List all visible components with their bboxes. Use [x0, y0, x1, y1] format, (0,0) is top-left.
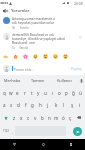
button[interactable]: Kullanıcı	[51, 75, 77, 86]
button[interactable]: ğ	[70, 86, 77, 99]
button[interactable]: j	[44, 99, 52, 111]
button[interactable]: Emoji	[13, 53, 18, 60]
button[interactable]: i	[76, 99, 84, 111]
staticText: Kullanıcı	[57, 78, 72, 83]
staticText: u	[44, 90, 47, 96]
staticText: Arkamguzumaz marakende o cok hayraket yu…	[12, 17, 58, 25]
staticText: g	[31, 102, 34, 108]
button[interactable]: Tamam	[25, 75, 51, 86]
button[interactable]: l	[60, 99, 68, 111]
button[interactable]: k	[52, 99, 60, 111]
staticText: b	[41, 115, 44, 121]
button[interactable]: Back	[0, 6, 85, 15]
staticText: t	[31, 90, 33, 96]
staticText: d	[17, 102, 20, 108]
button[interactable]: c	[25, 111, 32, 124]
button[interactable]: ç	[67, 111, 74, 124]
staticText: m	[54, 115, 59, 121]
staticText: i	[79, 102, 81, 108]
button[interactable]: ,	[10, 126, 15, 136]
button[interactable]: ş	[68, 99, 76, 111]
staticText: ?123	[3, 129, 9, 133]
staticText: l	[63, 102, 65, 108]
button[interactable]: x	[18, 111, 25, 124]
button[interactable]: demoza566 Bozuhozd ve cok buzardiye, ell…	[0, 33, 85, 50]
staticText: Tamam	[31, 78, 45, 83]
button[interactable]: Emoji	[63, 53, 68, 60]
staticText: f	[25, 102, 27, 108]
staticText: k	[55, 102, 58, 108]
button[interactable]: u	[42, 86, 49, 99]
staticText: x	[20, 115, 23, 121]
button[interactable]: Paylaş	[71, 66, 82, 71]
staticText: r	[24, 90, 26, 96]
staticText: w	[9, 90, 13, 96]
button[interactable]: g	[29, 99, 36, 111]
button[interactable]: Emoji	[43, 53, 48, 60]
staticText: ,	[12, 129, 13, 134]
button[interactable]: ü	[77, 86, 84, 99]
staticText: ö	[62, 115, 65, 121]
staticText: q	[3, 90, 6, 96]
button[interactable]: Emoji	[53, 53, 58, 60]
button[interactable]: m	[53, 111, 60, 124]
staticText: p	[65, 90, 68, 96]
button[interactable]: Emoji	[3, 53, 8, 60]
staticText: c	[27, 115, 30, 121]
button[interactable]: z	[11, 111, 18, 124]
staticText: s	[10, 102, 13, 108]
staticText: Yorumlar	[11, 8, 30, 14]
button[interactable]: ?123	[1, 126, 10, 136]
button[interactable]: Shift	[1, 111, 11, 124]
staticText: 1s Yanıtla	[12, 46, 29, 50]
button[interactable]: d	[15, 99, 22, 111]
staticText: Yorum ekle...	[14, 67, 71, 71]
staticText: z	[13, 115, 16, 121]
button[interactable]: q	[1, 86, 7, 99]
button[interactable]: o	[56, 86, 63, 99]
button[interactable]: Backspace	[74, 111, 84, 124]
button[interactable]: Home	[29, 139, 57, 150]
staticText: a	[3, 102, 6, 108]
button[interactable]: p	[63, 86, 70, 99]
staticText: o	[58, 90, 61, 96]
staticText: y	[37, 90, 40, 96]
button[interactable]: Arkamguzumaz marakende o cok hayraket yu…	[0, 17, 85, 30]
button[interactable]: b	[39, 111, 46, 124]
button[interactable]: a	[1, 99, 8, 111]
button[interactable]: h	[36, 99, 44, 111]
staticText: v	[34, 115, 37, 121]
staticText: ı	[52, 90, 54, 96]
button[interactable]: e	[14, 86, 21, 99]
staticText: ü	[79, 90, 82, 96]
button[interactable]: v	[32, 111, 39, 124]
staticText: n	[48, 115, 51, 121]
staticText: demoza566 Bozuhozd ve cok buzardiye, ell…	[12, 33, 66, 45]
staticText: ğ	[72, 90, 75, 96]
button[interactable]: Emoji	[33, 53, 38, 60]
staticText: ş	[71, 102, 74, 108]
button[interactable]: Merhaba	[0, 75, 25, 86]
button[interactable]: ı	[49, 86, 56, 99]
button[interactable]: w	[7, 86, 14, 99]
button[interactable]: Like	[79, 36, 82, 39]
staticText: Merhaba	[4, 78, 21, 83]
staticText: 20:08	[74, 1, 83, 6]
button[interactable]: Recents	[57, 139, 85, 150]
button[interactable]: y	[35, 86, 42, 99]
button[interactable]: Voice input	[77, 75, 85, 86]
staticText: ç	[69, 115, 72, 121]
button[interactable]: n	[46, 111, 53, 124]
button[interactable]: Emoji	[23, 53, 28, 60]
button[interactable]: f	[22, 99, 29, 111]
button[interactable]: Back	[0, 139, 29, 150]
button[interactable]: Back	[2, 7, 9, 14]
button[interactable]: s	[8, 99, 15, 111]
button[interactable]: .	[66, 126, 71, 136]
button[interactable]: r	[21, 86, 28, 99]
button[interactable]: Send	[73, 127, 82, 136]
staticText: h	[39, 102, 42, 108]
button[interactable]: ö	[60, 111, 67, 124]
button[interactable]: t	[28, 86, 35, 99]
